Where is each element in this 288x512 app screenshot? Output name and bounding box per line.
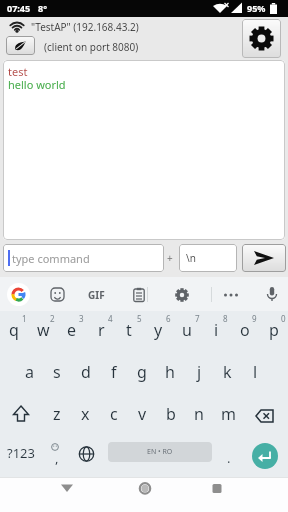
staticText: v: [138, 403, 147, 425]
button[interactable]: n: [184, 403, 214, 425]
staticText: hello world: [8, 77, 66, 92]
button[interactable]: [203, 474, 231, 502]
button[interactable]: c: [99, 403, 129, 425]
button[interactable]: GIF: [81, 284, 111, 306]
button[interactable]: \n: [179, 244, 237, 272]
button[interactable]: w: [28, 319, 58, 341]
staticText: 2: [50, 313, 55, 324]
button[interactable]: d: [71, 361, 101, 383]
button[interactable]: f: [99, 361, 129, 383]
button[interactable]: b: [156, 403, 186, 425]
button[interactable]: o: [230, 319, 260, 341]
button[interactable]: z: [42, 403, 72, 425]
button[interactable]: r: [86, 319, 116, 341]
staticText: z: [53, 403, 61, 425]
button[interactable]: [242, 244, 286, 272]
staticText: test: [8, 64, 28, 79]
staticText: u: [182, 319, 192, 341]
button[interactable]: [7, 283, 30, 306]
staticText: type command: [12, 251, 90, 266]
button[interactable]: m: [213, 403, 243, 425]
button[interactable]: j: [184, 361, 214, 383]
button[interactable]: [172, 285, 192, 305]
staticText: 9: [252, 313, 257, 324]
button[interactable]: s: [42, 361, 72, 383]
staticText: y: [154, 319, 163, 341]
staticText: w: [37, 319, 50, 341]
button[interactable]: [6, 36, 35, 55]
staticText: .: [227, 449, 231, 467]
staticText: n: [194, 403, 204, 425]
staticText: e: [67, 319, 77, 341]
staticText: 1: [22, 313, 27, 324]
staticText: +: [167, 251, 173, 265]
staticText: a: [25, 361, 34, 383]
staticText: i: [214, 319, 219, 341]
button[interactable]: ?123: [6, 442, 36, 464]
button[interactable]: h: [155, 361, 185, 383]
staticText: ,: [55, 449, 59, 467]
button[interactable]: a: [14, 361, 44, 383]
button[interactable]: [262, 284, 282, 304]
staticText: p: [269, 319, 279, 341]
staticText: h: [165, 361, 175, 383]
button[interactable]: [74, 442, 98, 466]
staticText: GIF: [88, 288, 105, 302]
button[interactable]: ,: [42, 447, 72, 469]
button[interactable]: i: [201, 319, 231, 341]
button[interactable]: x: [70, 403, 100, 425]
staticText: 8: [223, 313, 228, 324]
staticText: q: [9, 319, 19, 341]
staticText: ?123: [7, 444, 35, 462]
button[interactable]: [129, 285, 149, 305]
button[interactable]: .: [214, 447, 244, 469]
staticText: x: [81, 403, 90, 425]
button[interactable]: [221, 285, 241, 305]
staticText: 0: [281, 313, 286, 324]
staticText: g: [137, 361, 147, 383]
button[interactable]: [8, 401, 34, 427]
button[interactable]: q: [0, 319, 29, 341]
button[interactable]: [47, 284, 68, 305]
button[interactable]: [131, 474, 159, 502]
button[interactable]: (client on port 8080): [44, 40, 139, 54]
button[interactable]: e: [57, 319, 87, 341]
staticText: j: [197, 361, 202, 383]
staticText: k: [223, 361, 232, 383]
staticText: r: [98, 319, 105, 341]
staticText: \n: [186, 251, 196, 265]
staticText: 4: [108, 313, 113, 324]
staticText: f: [111, 361, 117, 383]
staticText: 3: [79, 313, 84, 324]
staticText: 8°: [38, 2, 47, 14]
button[interactable]: [252, 443, 278, 469]
button[interactable]: t: [114, 319, 144, 341]
button[interactable]: [242, 19, 281, 58]
button[interactable]: type command: [3, 244, 164, 272]
button[interactable]: g: [127, 361, 157, 383]
staticText: s: [53, 361, 61, 383]
button[interactable]: u: [172, 319, 202, 341]
staticText: 07:45: [7, 2, 31, 14]
button[interactable]: p: [259, 319, 288, 341]
button[interactable]: k: [212, 361, 242, 383]
button[interactable]: l: [240, 361, 270, 383]
staticText: 7: [195, 313, 200, 324]
staticText: l: [253, 361, 258, 383]
staticText: 5: [137, 313, 142, 324]
button[interactable]: y: [143, 319, 173, 341]
staticText: b: [166, 403, 176, 425]
staticText: o: [240, 319, 250, 341]
staticText: EN • RO: [147, 447, 173, 457]
button[interactable]: [53, 474, 81, 502]
button[interactable]: [252, 403, 279, 429]
staticText: 6: [166, 313, 171, 324]
staticText: 95%: [247, 2, 266, 14]
staticText: m: [221, 403, 236, 425]
staticText: d: [81, 361, 91, 383]
staticText: "TestAP" (192.168.43.2): [31, 20, 139, 34]
staticText: c: [110, 403, 118, 425]
staticText: t: [126, 319, 132, 341]
button[interactable]: v: [127, 403, 157, 425]
button[interactable]: EN • RO: [108, 442, 212, 462]
